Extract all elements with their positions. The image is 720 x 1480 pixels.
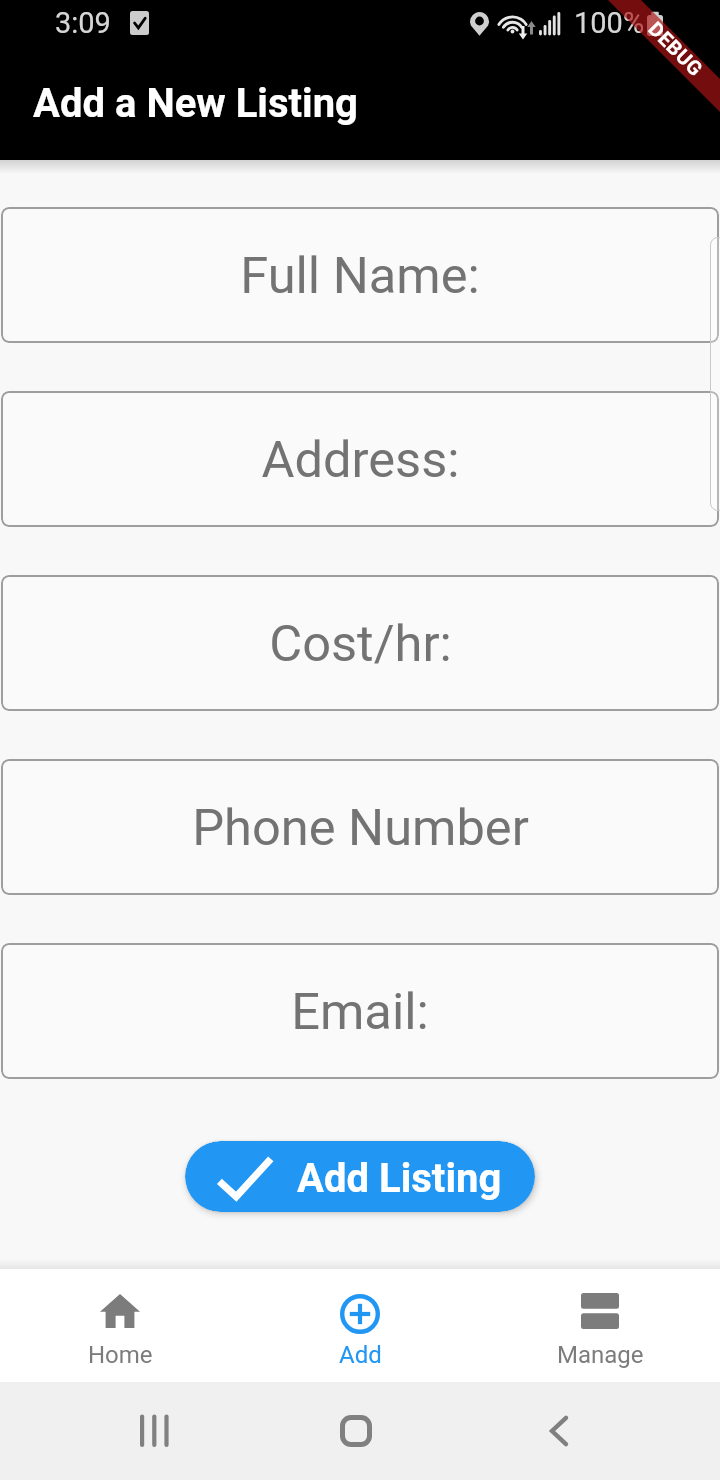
staticText: Phone Number [192, 798, 529, 857]
staticText: 100% [574, 6, 645, 40]
button[interactable]: Cost/hr: [1, 575, 719, 711]
staticText: Full Name: [240, 246, 480, 305]
button[interactable]: Home [0, 1269, 240, 1382]
button[interactable]: Phone Number [1, 759, 719, 895]
staticText: Home [88, 1341, 153, 1369]
staticText: Manage [557, 1341, 644, 1369]
staticText: DEBUG [644, 17, 708, 80]
button[interactable]: Full Name: [1, 207, 719, 343]
staticText: 3:09 [55, 6, 111, 40]
button[interactable]: Home [296, 1391, 416, 1471]
button[interactable]: Add [240, 1269, 480, 1382]
staticText: Add a New Listing [33, 80, 358, 127]
button[interactable]: Add Listing [185, 1141, 535, 1212]
button[interactable]: Address: [1, 391, 719, 527]
staticText: Add [339, 1341, 382, 1369]
button[interactable]: Back [500, 1391, 620, 1471]
staticText: Add Listing [297, 1155, 502, 1202]
button[interactable]: Manage [480, 1269, 720, 1382]
staticText: Email: [291, 982, 429, 1041]
button[interactable]: Recents [95, 1391, 215, 1471]
staticText: Cost/hr: [269, 614, 452, 673]
button[interactable]: Email: [1, 943, 719, 1079]
staticText: Address: [261, 430, 460, 489]
